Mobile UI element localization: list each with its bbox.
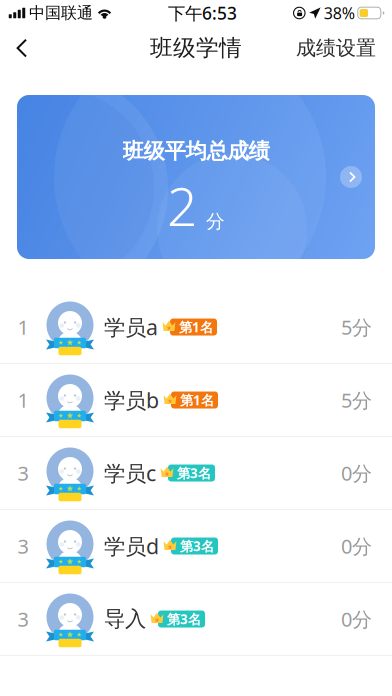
staticText: 1 bbox=[17, 314, 28, 340]
button[interactable]: 返回 bbox=[0, 26, 46, 70]
staticText: 班级学情 bbox=[150, 34, 242, 62]
staticText: 0分 bbox=[341, 533, 372, 559]
button[interactable]: 1 bbox=[0, 291, 392, 364]
staticText: 38% bbox=[324, 2, 355, 24]
staticText: 3 bbox=[17, 460, 28, 486]
staticText: 第1名 bbox=[179, 318, 213, 336]
staticText: 分 bbox=[206, 210, 225, 233]
button[interactable]: 3 bbox=[0, 437, 392, 510]
staticText: 导入 bbox=[104, 606, 146, 632]
staticText: 学员d bbox=[104, 532, 159, 560]
button[interactable]: 班级平均总成绩 bbox=[0, 95, 392, 259]
button[interactable]: 1 bbox=[0, 364, 392, 437]
staticText: 班级平均总成绩 bbox=[122, 138, 269, 164]
staticText: 成绩设置 bbox=[296, 36, 376, 60]
staticText: 第3名 bbox=[177, 464, 211, 482]
button[interactable]: 成绩设置 bbox=[296, 26, 392, 70]
staticText: 第3名 bbox=[167, 610, 201, 628]
staticText: 2 bbox=[167, 170, 197, 241]
button[interactable]: 3 bbox=[0, 510, 392, 583]
staticText: 学员a bbox=[104, 313, 158, 341]
staticText: 中国联通 bbox=[29, 3, 93, 23]
staticText: 5分 bbox=[341, 314, 372, 340]
staticText: 第1名 bbox=[180, 391, 214, 409]
staticText: 3 bbox=[17, 606, 28, 632]
staticText: 第3名 bbox=[180, 537, 214, 555]
staticText: 学员b bbox=[104, 386, 159, 414]
staticText: 1 bbox=[17, 387, 28, 413]
staticText: 0分 bbox=[341, 606, 372, 632]
staticText: 下午6:53 bbox=[168, 1, 237, 24]
staticText: 5分 bbox=[341, 387, 372, 413]
button[interactable]: 3 bbox=[0, 583, 392, 656]
staticText: 学员c bbox=[104, 459, 156, 487]
staticText: 0分 bbox=[341, 460, 372, 486]
staticText: 3 bbox=[17, 533, 28, 559]
